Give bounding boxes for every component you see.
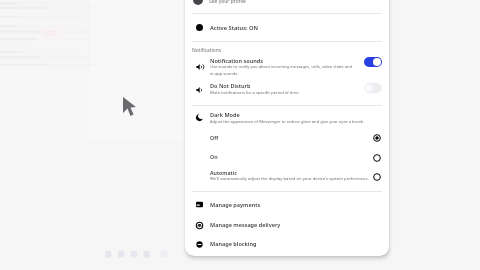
staticText: Manage message delivery [210,221,281,229]
button[interactable]: See your profile [185,0,389,11]
button[interactable] [185,195,389,214]
button[interactable]: Do Not Disturb [185,80,389,98]
staticText: Dark Mode [210,111,240,119]
staticText: Manage payments [210,201,261,209]
button[interactable] [185,216,389,235]
staticText: Do Not Disturb [210,82,251,90]
staticText: Manage blocking [210,240,257,248]
button[interactable]: Off [185,130,389,146]
button[interactable] [185,235,389,254]
staticText: Off [210,134,219,141]
staticText: Adjust the appearance of Messenger to re… [210,119,385,125]
button[interactable]: Notification sounds [185,56,389,78]
button[interactable]: On [185,149,389,165]
staticText: Notification sounds [210,57,263,65]
staticText: See your profile [209,0,246,5]
staticText: We'll automatically adjust the display b… [210,176,380,182]
button[interactable]: Toggle off [364,83,382,93]
staticText: On [210,153,218,160]
button[interactable]: Toggle on [364,57,382,67]
staticText: Active Status: ON [210,24,259,32]
button[interactable] [185,16,389,38]
staticText: Mute notifications for a specific period… [210,90,360,96]
staticText: Notifications [192,47,222,54]
staticText: Use sounds to notify you about incoming … [210,64,356,76]
button[interactable]: Automatic [185,165,389,185]
staticText: Automatic [210,169,237,176]
